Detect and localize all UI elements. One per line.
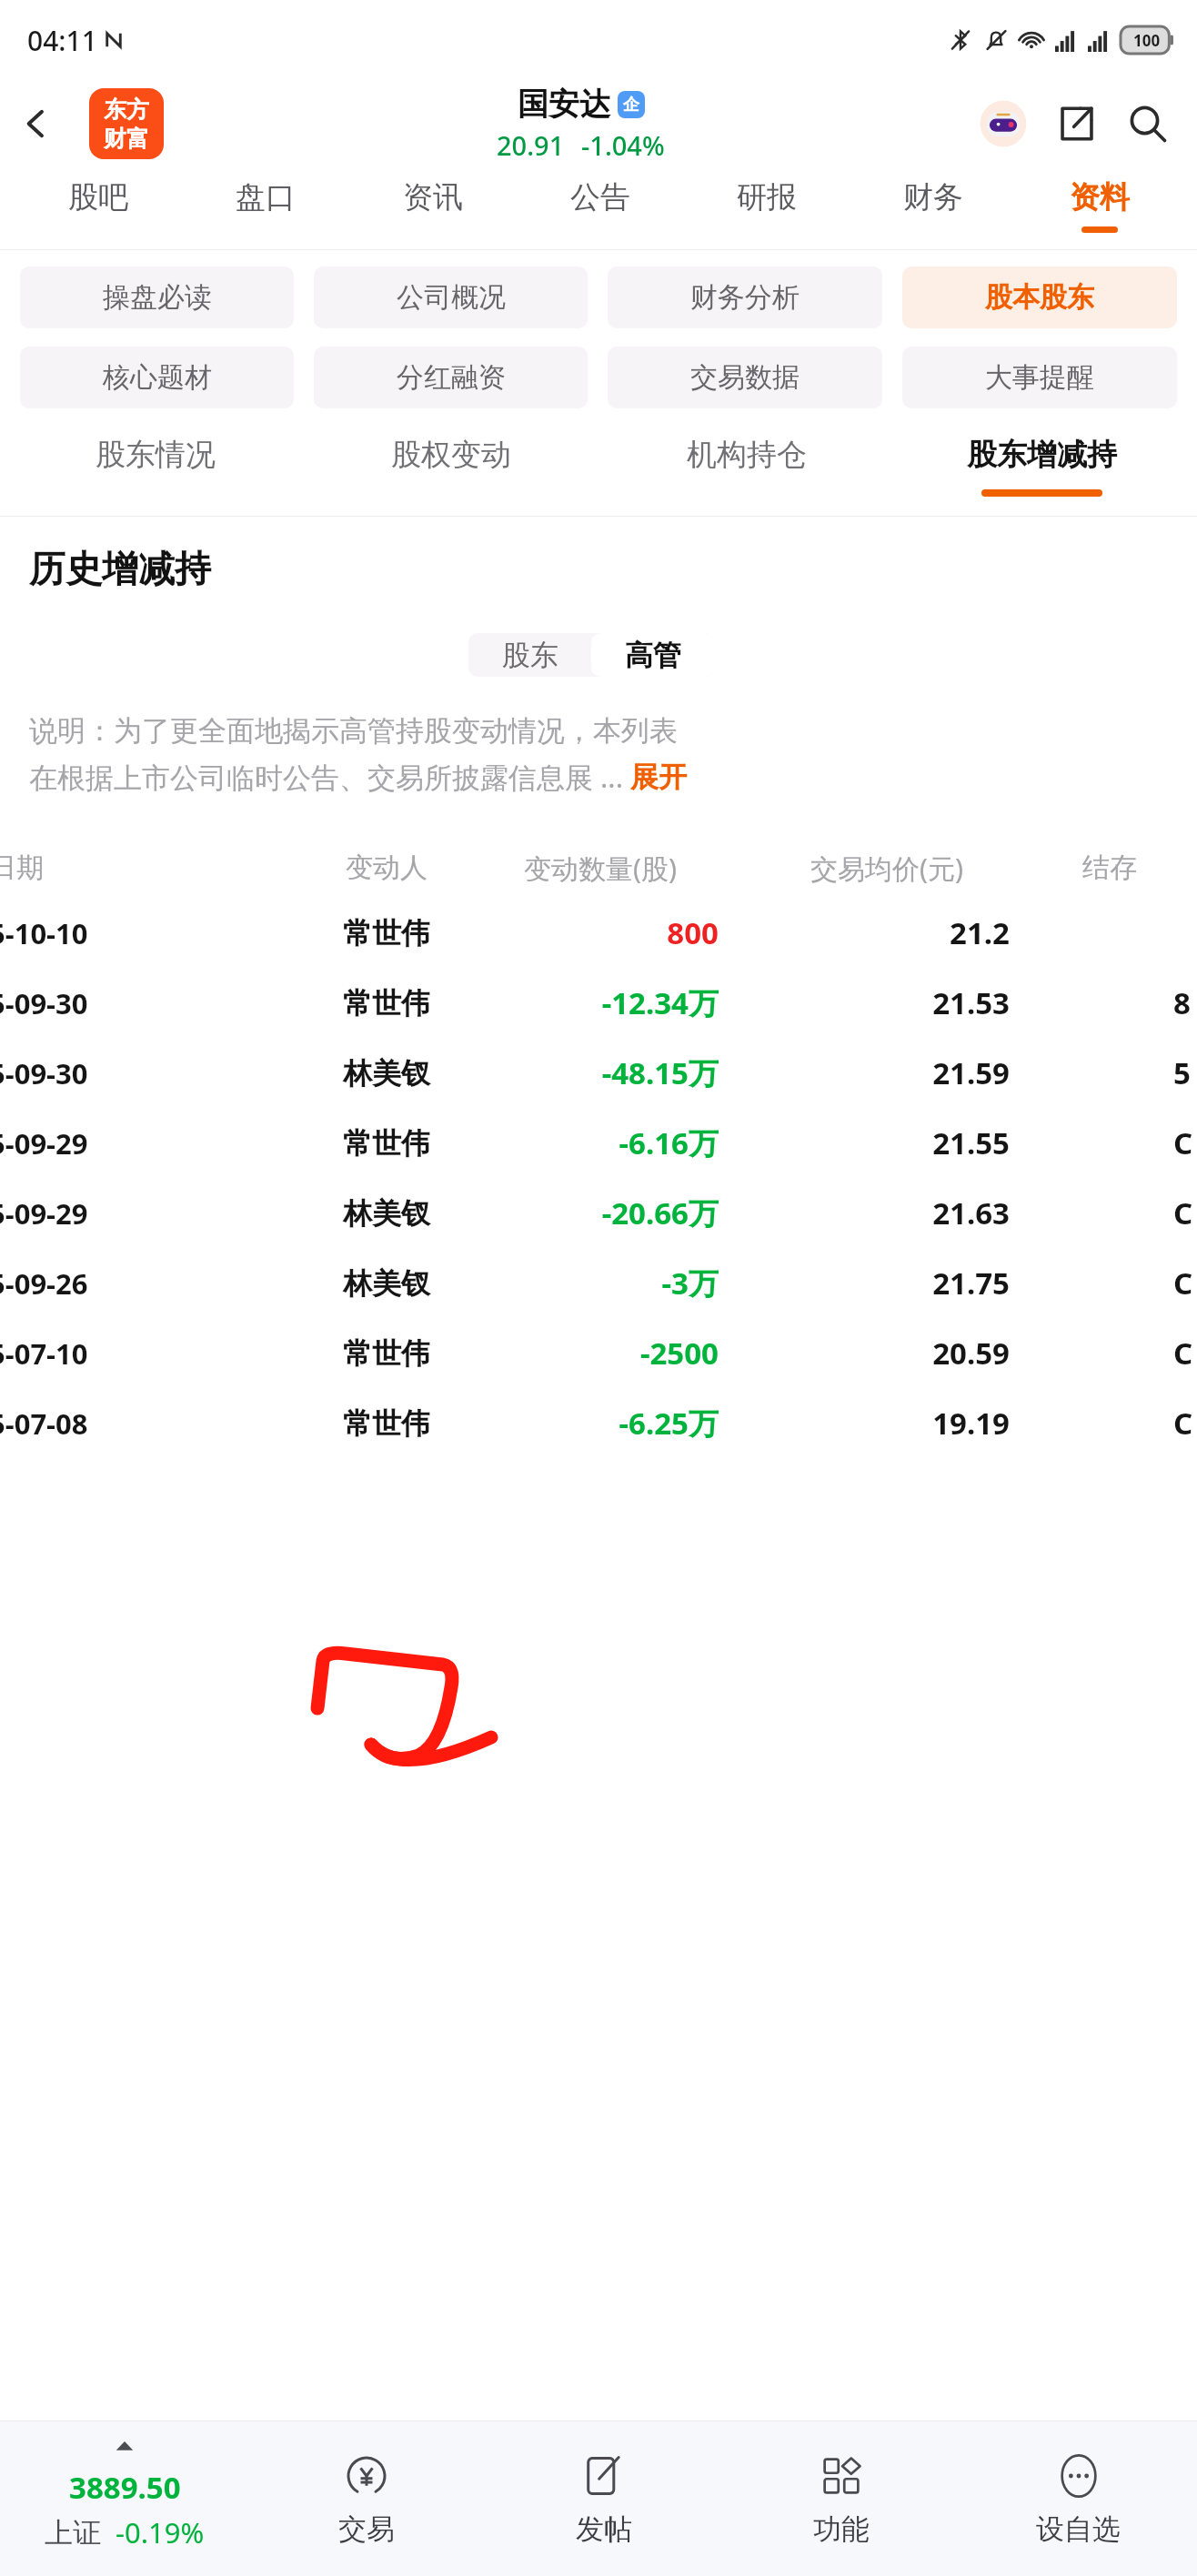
button[interactable]: 资料 bbox=[1016, 167, 1182, 249]
staticText: 股东情况 bbox=[96, 436, 216, 474]
staticText: -0.19% bbox=[116, 2513, 205, 2551]
staticText: 19.19 bbox=[764, 1403, 1010, 1444]
staticText: 盘口 bbox=[236, 178, 296, 216]
button[interactable]: Share bbox=[1048, 95, 1106, 153]
button[interactable]: 机构持仓 bbox=[598, 425, 894, 516]
staticText: -20.66万 bbox=[482, 1192, 719, 1233]
staticText: C bbox=[1173, 1263, 1197, 1303]
button[interactable]: Search bbox=[1119, 95, 1177, 153]
button[interactable]: AI assistant bbox=[973, 94, 1033, 154]
staticText: -1.04% bbox=[581, 127, 665, 163]
staticText: 机构持仓 bbox=[687, 436, 807, 474]
staticText: 5-09-29 bbox=[0, 1194, 198, 1233]
button[interactable]: 5-09-29 bbox=[0, 1178, 1197, 1248]
staticText: 林美钗 bbox=[318, 1055, 455, 1092]
staticText: 财务分析 bbox=[690, 280, 800, 315]
staticText: 21.55 bbox=[764, 1122, 1010, 1163]
staticText: 常世伟 bbox=[318, 1405, 455, 1442]
staticText: 财务 bbox=[903, 178, 963, 216]
staticText: -6.25万 bbox=[482, 1403, 719, 1444]
staticText: C bbox=[1173, 1122, 1197, 1163]
button[interactable]: 核心题材 bbox=[20, 347, 294, 408]
staticText: 21.63 bbox=[764, 1192, 1010, 1233]
staticText: 操盘必读 bbox=[103, 280, 212, 315]
button[interactable]: 5-09-29 bbox=[0, 1108, 1197, 1178]
staticText: 公司概况 bbox=[397, 280, 506, 315]
staticText: 5-09-29 bbox=[0, 1124, 198, 1162]
staticText: 股权变动 bbox=[391, 436, 511, 474]
staticText: 5-07-08 bbox=[0, 1404, 198, 1443]
button[interactable]: 大事提醒 bbox=[902, 347, 1177, 408]
staticText: -6.16万 bbox=[482, 1122, 719, 1163]
staticText: 发帖 bbox=[576, 2511, 632, 2547]
staticText: -48.15万 bbox=[482, 1052, 719, 1093]
button[interactable]: 公司概况 bbox=[314, 267, 588, 328]
button[interactable]: 5-09-30 bbox=[0, 1038, 1197, 1108]
staticText: 21.59 bbox=[764, 1052, 1010, 1093]
staticText: 常世伟 bbox=[318, 1125, 455, 1162]
staticText: 在根据上市公司临时公告、交易所披露信息展 ... bbox=[29, 758, 623, 796]
button[interactable]: 股本股东 bbox=[902, 267, 1177, 328]
button[interactable]: 资讯 bbox=[349, 167, 517, 249]
staticText: 结存 bbox=[1082, 850, 1197, 885]
button[interactable]: 股东 bbox=[468, 633, 591, 677]
staticText: -12.34万 bbox=[482, 982, 719, 1023]
button[interactable]: 分红融资 bbox=[314, 347, 588, 408]
button[interactable]: 设自选 bbox=[960, 2421, 1197, 2576]
staticText: 常世伟 bbox=[318, 1335, 455, 1372]
staticText: 5-07-10 bbox=[0, 1334, 198, 1373]
staticText: 林美钗 bbox=[318, 1195, 455, 1232]
staticText: 交易 bbox=[338, 2511, 395, 2547]
staticText: 资料 bbox=[1070, 178, 1130, 216]
button[interactable]: 盘口 bbox=[182, 167, 349, 249]
staticText: 5-09-26 bbox=[0, 1264, 198, 1303]
staticText: 国安达 bbox=[518, 85, 610, 124]
button[interactable]: 操盘必读 bbox=[20, 267, 294, 328]
staticText: 3889.50 bbox=[69, 2467, 181, 2508]
button[interactable]: 股吧 bbox=[15, 167, 182, 249]
button[interactable]: 5-07-10 bbox=[0, 1318, 1197, 1388]
button[interactable]: 公告 bbox=[517, 167, 683, 249]
staticText: 5 bbox=[1173, 1052, 1197, 1093]
staticText: 上证 bbox=[45, 2515, 101, 2551]
staticText: 公告 bbox=[570, 178, 630, 216]
button[interactable]: 财务分析 bbox=[608, 267, 882, 328]
staticText: 大事提醒 bbox=[985, 360, 1094, 395]
button[interactable]: 5-09-26 bbox=[0, 1248, 1197, 1318]
staticText: 21.53 bbox=[764, 982, 1010, 1023]
button[interactable]: 股权变动 bbox=[303, 425, 598, 516]
staticText: C bbox=[1173, 1333, 1197, 1374]
button[interactable]: 发帖 bbox=[485, 2421, 722, 2576]
staticText: 林美钗 bbox=[318, 1265, 455, 1302]
staticText: 800 bbox=[482, 912, 719, 953]
staticText: -2500 bbox=[482, 1333, 719, 1374]
staticText: 展开 bbox=[630, 760, 687, 795]
staticText: 04:11 bbox=[27, 22, 97, 59]
button[interactable]: East Money home bbox=[89, 88, 164, 159]
staticText: 20.91 bbox=[497, 127, 565, 163]
staticText: 20.59 bbox=[764, 1333, 1010, 1374]
button[interactable]: 高管 bbox=[591, 633, 714, 677]
button[interactable]: 展开 bbox=[630, 760, 687, 795]
button[interactable]: 5-07-08 bbox=[0, 1388, 1197, 1458]
button[interactable]: 5-09-30 bbox=[0, 968, 1197, 1038]
button[interactable]: 股东情况 bbox=[7, 425, 303, 516]
button[interactable]: 交易 bbox=[248, 2421, 485, 2576]
button[interactable]: 功能 bbox=[722, 2421, 960, 2576]
button[interactable]: 研报 bbox=[683, 167, 850, 249]
staticText: 核心题材 bbox=[103, 360, 212, 395]
staticText: 股本股东 bbox=[985, 280, 1094, 315]
staticText: 21.75 bbox=[764, 1263, 1010, 1303]
staticText: 高管 bbox=[625, 638, 681, 673]
staticText: 股东 bbox=[502, 638, 558, 673]
button[interactable]: 5-10-10 bbox=[0, 898, 1197, 968]
button[interactable]: 交易数据 bbox=[608, 347, 882, 408]
staticText: 研报 bbox=[737, 178, 797, 216]
button[interactable]: 3889.50 bbox=[0, 2421, 248, 2576]
button[interactable]: Back bbox=[7, 95, 65, 153]
staticText: 变动人 bbox=[318, 850, 455, 885]
button[interactable]: 股东增减持 bbox=[894, 425, 1190, 516]
button[interactable]: 财务 bbox=[850, 167, 1016, 249]
staticText: 常世伟 bbox=[318, 985, 455, 1021]
staticText: 日期 bbox=[0, 850, 126, 885]
